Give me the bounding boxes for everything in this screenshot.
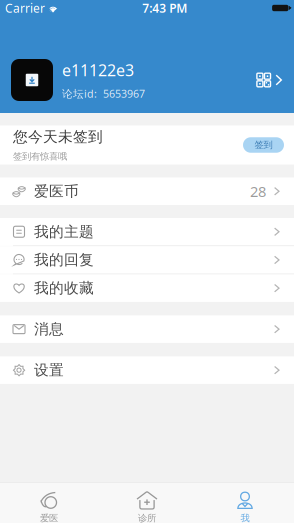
staticText: Carrier xyxy=(5,0,45,16)
button[interactable]: 您今天未签到 xyxy=(0,125,294,164)
staticText: 我的收藏 xyxy=(34,279,94,297)
button[interactable]: 诊所 xyxy=(98,482,196,523)
staticText: 设置 xyxy=(34,361,64,379)
staticText: 消息 xyxy=(34,320,64,338)
staticText: 我的主题 xyxy=(34,223,94,241)
staticText: 我的回复 xyxy=(34,251,94,269)
button[interactable]: 消息 xyxy=(0,315,294,343)
staticText: 签到有惊喜哦 xyxy=(13,151,67,162)
staticText: 我 xyxy=(240,512,249,523)
button[interactable]: 爱医币 xyxy=(0,177,294,205)
button[interactable]: e11122e3 xyxy=(0,59,294,101)
staticText: 爱医 xyxy=(40,512,58,523)
button[interactable]: 我的收藏 xyxy=(0,274,294,302)
staticText: 论坛id: 5653967 xyxy=(62,86,145,101)
staticText: e11122e3 xyxy=(62,59,134,80)
button[interactable]: 我的回复 xyxy=(0,246,294,274)
button[interactable]: 我 xyxy=(196,482,294,523)
button[interactable]: 我的主题 xyxy=(0,218,294,245)
staticText: 您今天未签到 xyxy=(13,128,103,146)
staticText: 爱医币 xyxy=(34,182,79,200)
button[interactable]: 设置 xyxy=(0,356,294,384)
staticText: 签到 xyxy=(254,139,272,151)
staticText: 7:43 PM xyxy=(142,0,187,16)
button[interactable]: 爱医 xyxy=(0,482,98,523)
staticText: 诊所 xyxy=(138,512,156,523)
staticText: 28 xyxy=(250,181,266,201)
